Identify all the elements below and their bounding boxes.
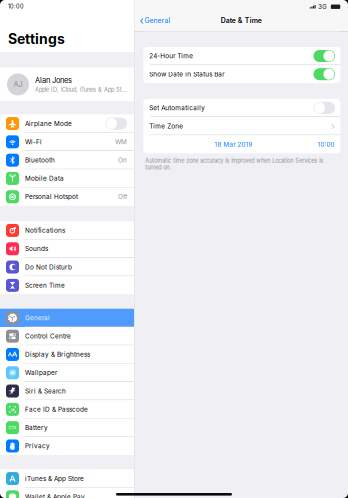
staticText: Bluetooth xyxy=(25,156,55,164)
staticText: WM xyxy=(115,138,127,146)
staticText: Battery xyxy=(25,424,48,431)
staticText: Time Zone xyxy=(149,122,183,130)
button[interactable]: Mobile Data xyxy=(0,169,134,188)
staticText: Wallet & Apple Pay xyxy=(25,493,85,498)
staticText: Date & Time xyxy=(221,16,262,25)
button[interactable]: Personal Hotspot xyxy=(0,188,134,206)
button[interactable]: Display & Brightness xyxy=(0,345,134,364)
button[interactable]: Wi-Fi xyxy=(0,133,134,151)
button[interactable]: Airplane Mode xyxy=(0,114,134,133)
staticText: AJ xyxy=(13,80,22,89)
staticText: Airplane Mode xyxy=(25,120,72,127)
staticText: Settings xyxy=(8,30,65,47)
staticText: 10:00 xyxy=(8,3,24,10)
button[interactable]: Siri & Search xyxy=(0,382,134,400)
staticText: 18 Mar 2019 xyxy=(214,140,252,148)
button[interactable]: Time Zone xyxy=(143,117,340,135)
staticText: Wallpaper xyxy=(25,369,57,377)
staticText: Personal Hotspot xyxy=(25,193,78,201)
button[interactable]: Privacy xyxy=(0,437,134,455)
button[interactable]: Control Centre xyxy=(0,327,134,345)
button[interactable]: General xyxy=(0,309,134,327)
staticText: Privacy xyxy=(25,442,50,450)
staticText: Notifications xyxy=(25,227,65,234)
button[interactable]: Face ID & Passcode xyxy=(0,400,134,418)
staticText: 24-Hour Time xyxy=(149,52,193,60)
staticText: Do Not Disturb xyxy=(25,263,72,271)
button[interactable]: Screen Time xyxy=(0,276,134,294)
staticText: ‹ xyxy=(139,14,143,27)
staticText: Face ID & Passcode xyxy=(25,405,88,413)
staticText: Show Date in Status Bar xyxy=(149,70,224,78)
button[interactable]: Wallet & Apple Pay xyxy=(0,488,134,498)
button[interactable]: Do Not Disturb xyxy=(0,258,134,276)
button[interactable]: Sounds xyxy=(0,240,134,258)
staticText: General xyxy=(25,314,50,322)
staticText: Control Centre xyxy=(25,332,71,340)
staticText: Siri & Search xyxy=(25,387,66,395)
staticText: Alan Jones xyxy=(35,76,72,85)
staticText: Apple ID, iCloud, iTunes & App St… xyxy=(35,86,127,93)
button[interactable]: AJ xyxy=(0,67,134,101)
button[interactable]: Set Automatically xyxy=(143,99,340,117)
staticText: 10:00 xyxy=(317,140,334,148)
button[interactable]: iTunes & App Store xyxy=(0,469,134,488)
staticText: On xyxy=(118,156,127,164)
staticText: › xyxy=(331,120,335,132)
staticText: 3G xyxy=(318,3,326,10)
staticText: Wi-Fi xyxy=(25,138,42,146)
staticText: Screen Time xyxy=(25,281,65,289)
staticText: Automatic time zone accuracy is improved… xyxy=(145,157,323,171)
button[interactable]: 24-Hour Time xyxy=(143,47,340,65)
staticText: Set Automatically xyxy=(149,104,205,112)
button[interactable]: Battery xyxy=(0,418,134,437)
staticText: iTunes & App Store xyxy=(25,475,84,482)
staticText: Sounds xyxy=(25,245,48,253)
button[interactable]: Wallpaper xyxy=(0,364,134,382)
staticText: Mobile Data xyxy=(25,175,64,182)
staticText: Display & Brightness xyxy=(25,351,90,358)
staticText: General xyxy=(144,16,170,25)
staticText: Off xyxy=(118,193,127,201)
button[interactable]: Bluetooth xyxy=(0,151,134,169)
button[interactable]: ‹ xyxy=(139,12,170,29)
button[interactable]: Notifications xyxy=(0,221,134,240)
button[interactable]: Show Date in Status Bar xyxy=(143,65,340,83)
